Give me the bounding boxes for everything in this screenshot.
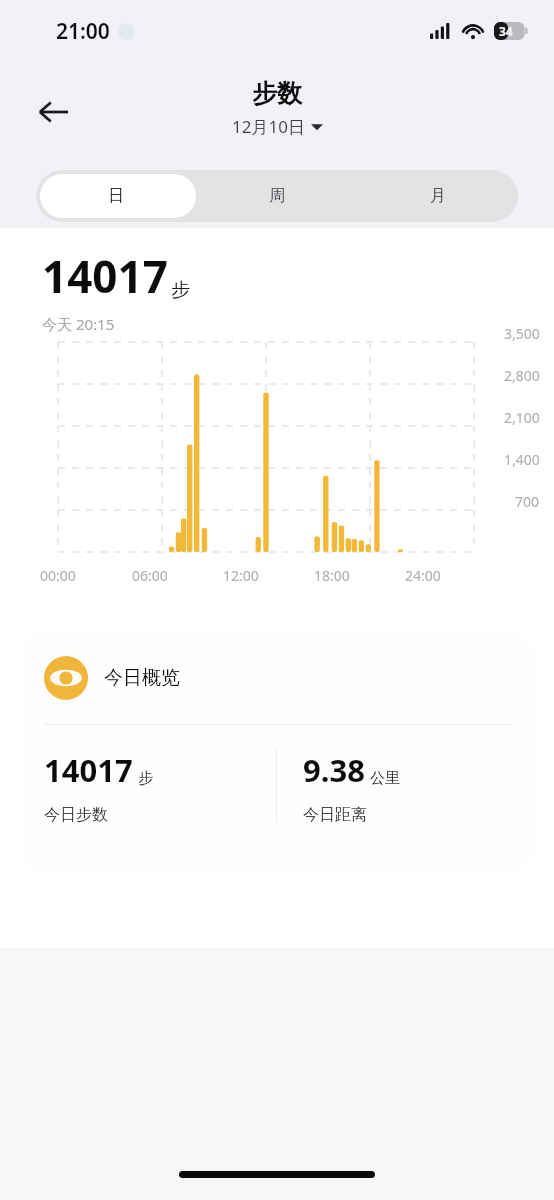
staticText: 12月10日 xyxy=(232,115,305,138)
staticText: 日 xyxy=(108,186,124,206)
staticText: 步 xyxy=(138,769,153,788)
staticText: 3,500 xyxy=(504,324,540,343)
staticText: 9.38 xyxy=(303,749,365,791)
staticText: 34 xyxy=(499,23,513,39)
staticText: 今日步数 xyxy=(44,805,108,825)
button[interactable]: Back xyxy=(24,82,84,142)
staticText: 今日概览 xyxy=(104,666,180,690)
staticText: 00:00 xyxy=(40,566,76,585)
staticText: 21:00 xyxy=(56,17,110,46)
staticText: 06:00 xyxy=(132,566,168,585)
staticText: 今天 20:15 xyxy=(42,314,115,334)
staticText: 14017 xyxy=(42,246,168,306)
staticText: 700 xyxy=(515,492,540,511)
button[interactable]: 今日概览 xyxy=(18,632,536,873)
staticText: 今日距离 xyxy=(303,805,367,825)
staticText: 月 xyxy=(430,186,446,206)
button[interactable]: 日 xyxy=(36,170,196,222)
staticText: 步 xyxy=(171,278,190,302)
button[interactable]: 周 xyxy=(196,170,357,222)
button[interactable]: 12月10日 xyxy=(232,115,323,138)
staticText: 14017 xyxy=(44,749,133,791)
staticText: 12:00 xyxy=(223,566,259,585)
button[interactable]: 月 xyxy=(357,170,518,222)
staticText: 18:00 xyxy=(314,566,350,585)
staticText: 周 xyxy=(269,186,285,206)
staticText: 公里 xyxy=(370,769,400,788)
staticText: 2,100 xyxy=(504,408,540,427)
staticText: 1,400 xyxy=(504,450,540,469)
staticText: 2,800 xyxy=(504,366,540,385)
staticText: 24:00 xyxy=(405,566,441,585)
staticText: 步数 xyxy=(252,78,302,109)
